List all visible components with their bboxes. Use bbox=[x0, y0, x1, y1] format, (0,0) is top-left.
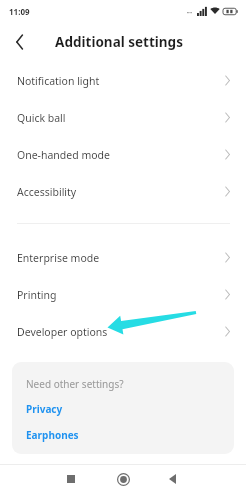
staticText: Accessibility bbox=[17, 185, 77, 199]
button[interactable]: Privacy bbox=[26, 402, 63, 416]
staticText: Notification light bbox=[17, 74, 100, 88]
staticText: Earphones bbox=[26, 428, 79, 442]
button[interactable]: Back bbox=[160, 467, 184, 491]
button[interactable]: One-handed mode bbox=[0, 136, 246, 173]
staticText: Need other settings? bbox=[26, 377, 124, 391]
staticText: Privacy bbox=[26, 402, 63, 416]
button[interactable]: Home bbox=[111, 467, 135, 491]
button[interactable]: Printing bbox=[0, 276, 246, 313]
staticText: Quick ball bbox=[17, 111, 66, 125]
staticText: Additional settings bbox=[55, 33, 183, 51]
staticText: One-handed mode bbox=[17, 148, 110, 162]
button[interactable]: Back bbox=[0, 23, 38, 61]
button[interactable]: Earphones bbox=[26, 428, 79, 442]
button[interactable]: Developer options bbox=[0, 313, 246, 350]
button[interactable]: Notification light bbox=[0, 62, 246, 99]
button[interactable]: Enterprise mode bbox=[0, 239, 246, 276]
staticText: Enterprise mode bbox=[17, 251, 100, 265]
button[interactable]: Quick ball bbox=[0, 99, 246, 136]
staticText: Developer options bbox=[17, 325, 108, 339]
staticText: Printing bbox=[17, 288, 57, 302]
button[interactable]: Accessibility bbox=[0, 173, 246, 210]
button[interactable]: Recent apps bbox=[59, 467, 83, 491]
staticText: 11:09 bbox=[9, 6, 30, 17]
